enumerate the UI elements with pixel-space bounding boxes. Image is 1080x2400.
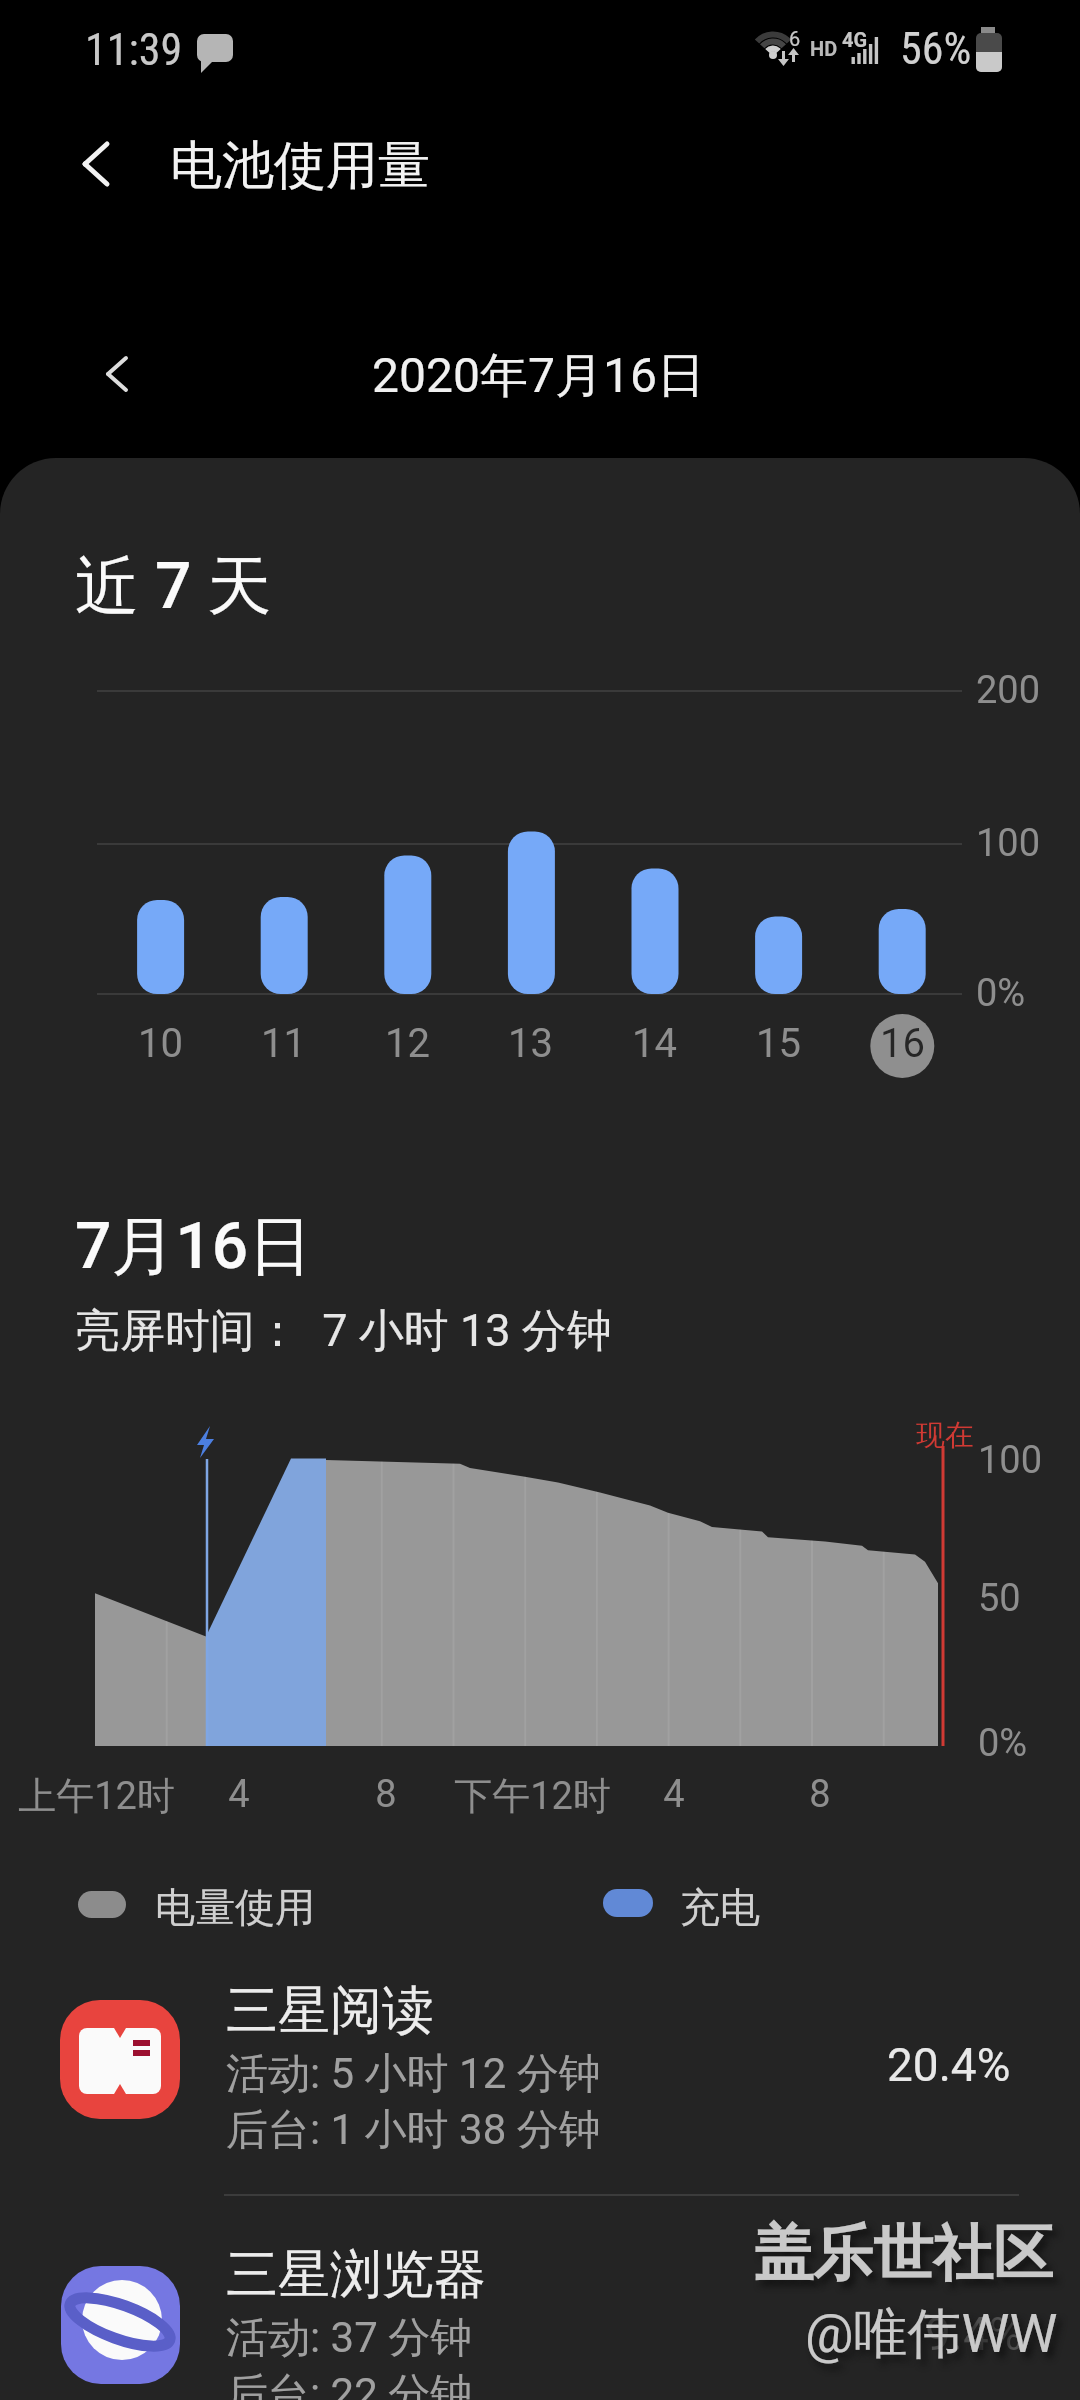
staticText: @唯伟WW [805, 2300, 1058, 2368]
staticText: 10 [138, 1020, 183, 1067]
staticText: 后台: 1 小时 38 分钟 [226, 2104, 601, 2157]
staticText: 三星浏览器 [226, 2242, 486, 2308]
staticText: 亮屏时间： 7 小时 13 分钟 [75, 1303, 612, 1360]
staticText: 16 [880, 1020, 925, 1067]
staticText: 上午12时 [18, 1772, 175, 1820]
staticText: 12 [385, 1020, 430, 1067]
staticText: 8 [375, 1772, 397, 1817]
staticText: 100 [976, 821, 1041, 866]
staticText: 50 [978, 1576, 1021, 1621]
button[interactable] [40, 2235, 1040, 2400]
staticText: 7月16日 [75, 1206, 313, 1287]
button[interactable] [60, 120, 140, 208]
staticText: 20.4% [887, 2038, 1011, 2092]
staticText: 2020年7月16日 [372, 346, 705, 406]
staticText: 4 [228, 1772, 250, 1817]
staticText: 活动: 37 分钟 [226, 2312, 473, 2365]
staticText: 4 [663, 1772, 685, 1817]
staticText: 下午12时 [454, 1772, 611, 1820]
staticText: HD [810, 37, 838, 60]
staticText: 11:39 [85, 24, 183, 76]
staticText: 11 [261, 1020, 306, 1067]
staticText: 活动: 5 小时 12 分钟 [226, 2048, 601, 2101]
staticText: 6 [789, 27, 801, 50]
staticText: 电量使用 [155, 1882, 315, 1932]
staticText: 200 [976, 668, 1041, 713]
staticText: 充电 [680, 1882, 760, 1932]
staticText: 8 [809, 1772, 831, 1817]
staticText: 0% [978, 1721, 1028, 1766]
staticText: 100 [978, 1438, 1043, 1483]
staticText: 15 [756, 1020, 801, 1067]
staticText: 9.4% [925, 2307, 1023, 2361]
staticText: 56% [900, 23, 972, 75]
staticText: 13 [508, 1020, 553, 1067]
staticText: 14 [632, 1020, 677, 1067]
staticText: 现在 [916, 1417, 974, 1454]
staticText: 盖乐世社区 [753, 2216, 1053, 2292]
staticText: 三星阅读 [226, 1978, 434, 2044]
staticText: 后台: 22 分钟 [226, 2368, 473, 2400]
button[interactable] [80, 340, 160, 410]
staticText: 4G [842, 28, 868, 51]
staticText: 电池使用量 [170, 133, 430, 199]
staticText: 近 7 天 [75, 546, 272, 627]
staticText: 0% [976, 971, 1026, 1016]
button[interactable] [40, 1970, 1040, 2165]
